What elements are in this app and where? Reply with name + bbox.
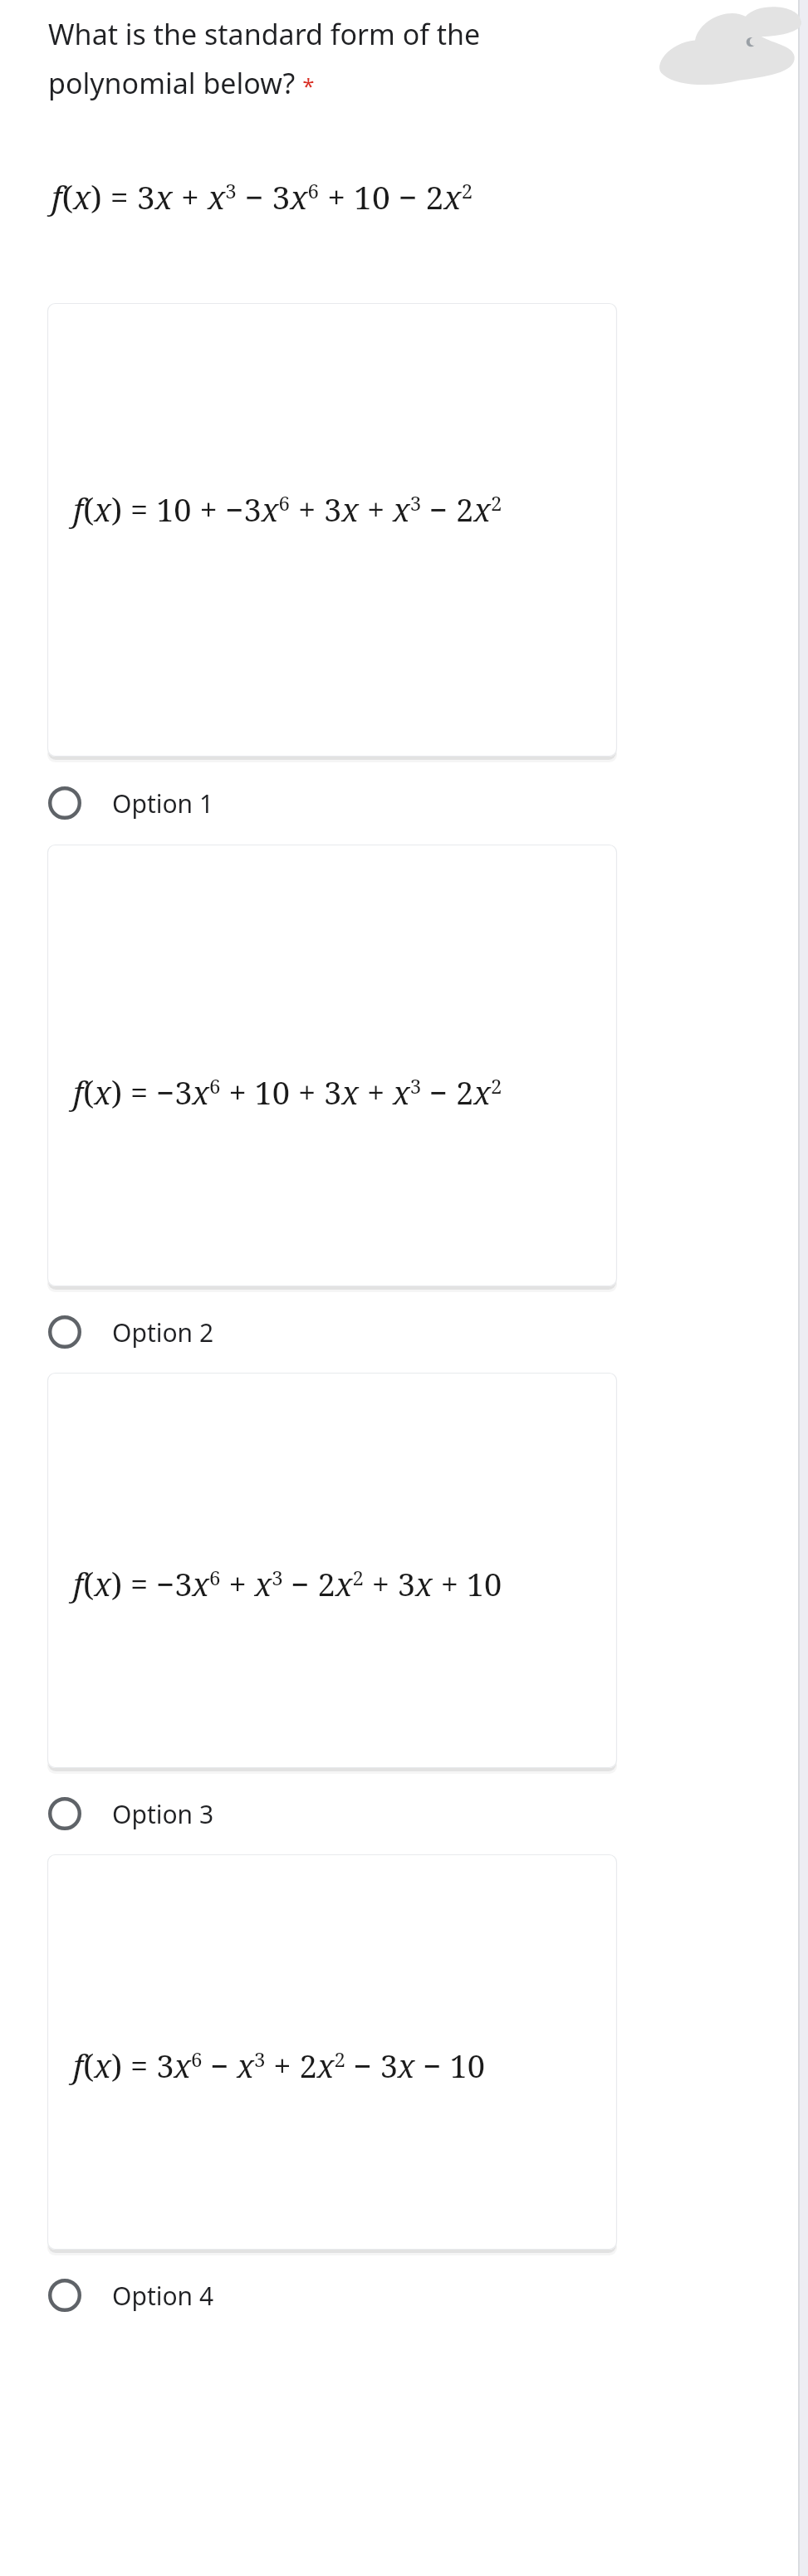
button[interactable]: f(x) = 3x6 − x3 + 2x2 − 3x − 10 (0, 1854, 808, 2255)
staticText: f(x) = 10 + −3x6 + 3x + x3 − 2x2 (73, 487, 502, 531)
button[interactable]: f(x) = −3x6 + 10 + 3x + x3 − 2x2 (0, 845, 808, 1291)
button[interactable]: Select Option 1 (0, 762, 808, 845)
staticText: Option 3 (112, 1797, 214, 1831)
button[interactable]: Select Option 2 (0, 1291, 808, 1373)
button[interactable]: f(x) = −3x6 + x3 − 2x2 + 3x + 10 (0, 1373, 808, 1773)
button[interactable]: f(x) = 10 + −3x6 + 3x + x3 − 2x2 (0, 303, 808, 762)
staticText: f(x) = 3x + x3 − 3x6 + 10 − 2x2 (51, 174, 473, 218)
staticText: f(x) = −3x6 + x3 − 2x2 + 3x + 10 (73, 1562, 502, 1605)
staticText: Option 4 (112, 2279, 214, 2313)
other: Select Option 4 (48, 2279, 81, 2312)
other: Select Option 3 (48, 1797, 81, 1830)
staticText: What is the standard form of the polynom… (48, 15, 481, 101)
staticText: Option 2 (112, 1315, 214, 1349)
other: Select Option 1 (48, 786, 81, 820)
staticText: f(x) = −3x6 + 10 + 3x + x3 − 2x2 (73, 1070, 502, 1114)
staticText: f(x) = 3x6 − x3 + 2x2 − 3x − 10 (73, 2044, 485, 2087)
button[interactable]: Select Option 3 (0, 1773, 808, 1854)
staticText: Option 1 (112, 786, 214, 820)
other: Select Option 2 (48, 1315, 81, 1349)
button[interactable]: Select Option 4 (0, 2255, 808, 2336)
